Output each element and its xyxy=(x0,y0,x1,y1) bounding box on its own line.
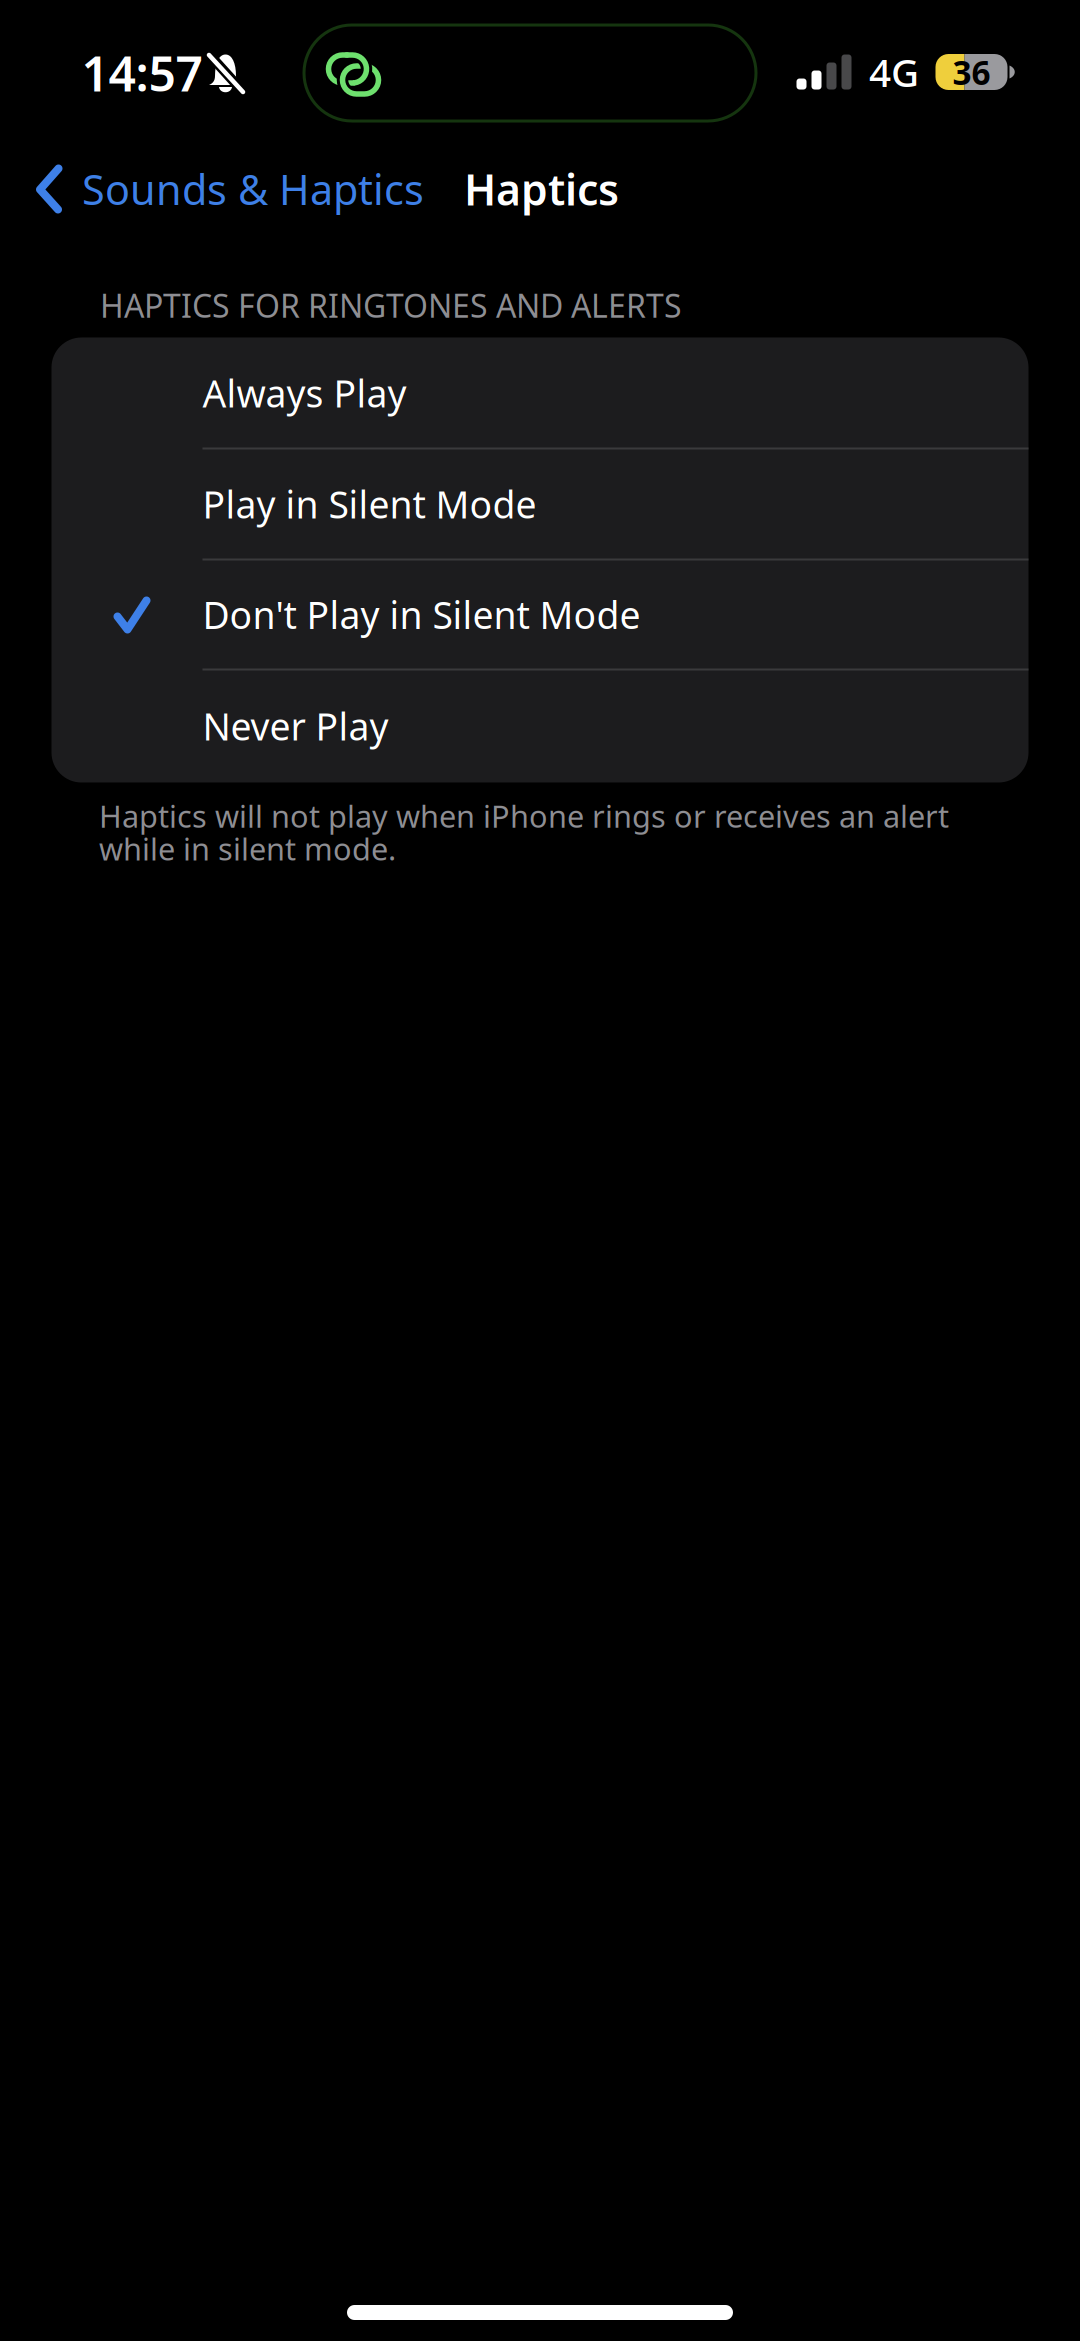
staticText: Play in Silent Mode xyxy=(202,479,536,529)
staticText: while in silent mode. xyxy=(99,828,396,869)
staticText: Sounds & Haptics xyxy=(82,162,424,216)
staticText: HAPTICS FOR RINGTONES AND ALERTS xyxy=(100,284,682,326)
button[interactable]: Sounds & Haptics xyxy=(0,145,438,233)
staticText: Haptics xyxy=(464,161,619,217)
staticText: 14:57 xyxy=(81,41,202,105)
staticText: 36 xyxy=(952,50,990,94)
button[interactable]: Play in Silent Mode xyxy=(51,448,1028,559)
staticText: Never Play xyxy=(202,701,388,751)
staticText: Don't Play in Silent Mode xyxy=(202,590,640,639)
staticText: 4G xyxy=(869,46,919,98)
button[interactable]: Never Play xyxy=(51,669,1028,782)
staticText: Haptics will not play when iPhone rings … xyxy=(99,795,949,836)
button[interactable]: Always Play xyxy=(51,337,1028,448)
button[interactable]: Don't Play in Silent Mode xyxy=(51,559,1028,669)
staticText: Always Play xyxy=(202,368,406,418)
